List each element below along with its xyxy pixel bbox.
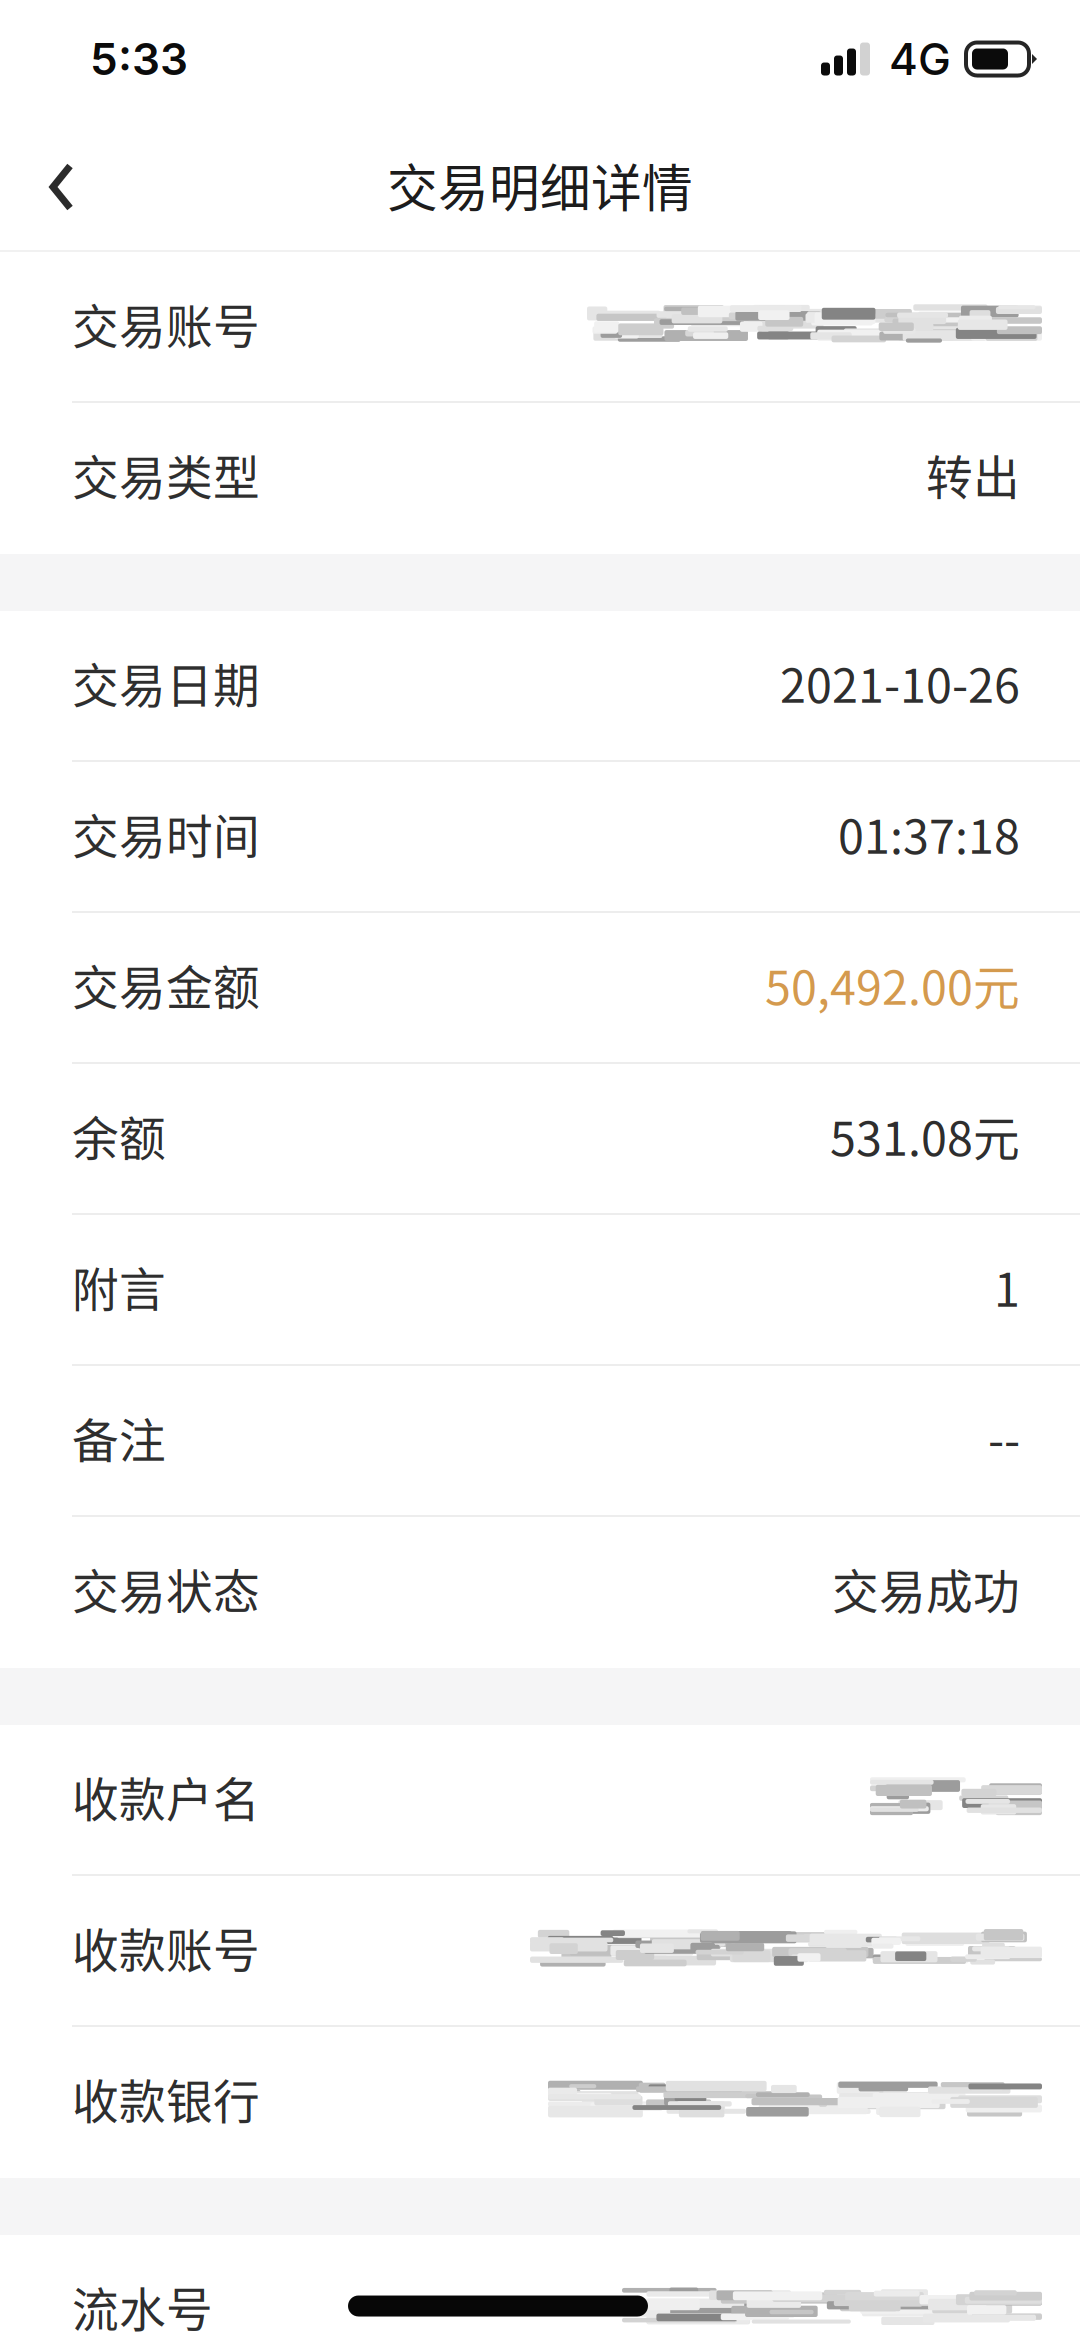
button[interactable]: 收款账号 — [0, 1876, 1080, 2027]
staticText: 收款账号 — [72, 1914, 260, 1981]
staticText: 交易明细详情 — [387, 148, 693, 222]
staticText: 交易状态 — [72, 1555, 260, 1622]
staticText: 5:33 — [90, 32, 188, 86]
button[interactable]: 余额 — [0, 1064, 1080, 1215]
staticText: 收款银行 — [72, 2065, 260, 2132]
button[interactable]: 备注 — [0, 1366, 1080, 1517]
staticText: 01:37:18 — [838, 800, 1020, 867]
staticText: 交易时间 — [72, 800, 260, 867]
button[interactable]: 交易日期 — [0, 611, 1080, 762]
staticText: 附言 — [72, 1253, 166, 1320]
staticText: 2021-10-26 — [780, 649, 1020, 716]
staticText: 50,492.00元 — [765, 951, 1020, 1018]
button[interactable]: 交易金额 — [0, 913, 1080, 1064]
staticText: 交易金额 — [72, 951, 260, 1018]
staticText: 交易成功 — [832, 1555, 1020, 1622]
button[interactable]: 交易类型 — [0, 403, 1080, 554]
staticText: 531.08元 — [830, 1102, 1020, 1169]
staticText: 备注 — [72, 1404, 166, 1471]
staticText: 余额 — [72, 1102, 166, 1169]
button[interactable]: 返回 — [0, 118, 108, 252]
staticText: 收款户名 — [72, 1763, 260, 1830]
button[interactable]: 交易时间 — [0, 762, 1080, 913]
button[interactable]: 收款户名 — [0, 1725, 1080, 1876]
button[interactable]: 交易账号 — [0, 252, 1080, 403]
staticText: 转出 — [926, 441, 1020, 508]
staticText: 1 — [994, 1253, 1020, 1320]
staticText: 交易类型 — [72, 441, 260, 508]
button[interactable]: 收款银行 — [0, 2027, 1080, 2178]
button[interactable]: 流水号 — [0, 2235, 1080, 2339]
staticText: 流水号 — [72, 2273, 213, 2339]
staticText: 交易日期 — [72, 649, 260, 716]
staticText: 交易账号 — [72, 290, 260, 357]
button[interactable]: 交易状态 — [0, 1517, 1080, 1668]
staticText: 4G — [889, 32, 951, 86]
staticText: -- — [988, 1404, 1020, 1471]
button[interactable]: 附言 — [0, 1215, 1080, 1366]
